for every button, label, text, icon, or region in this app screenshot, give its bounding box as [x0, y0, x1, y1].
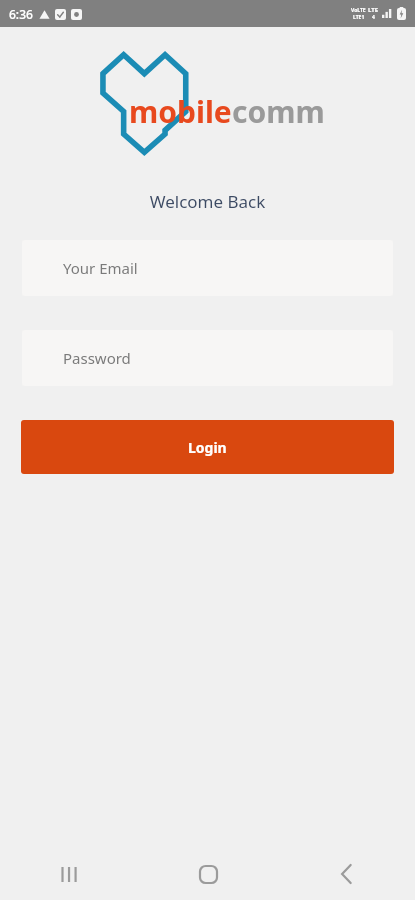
staticText: VoLTE — [351, 7, 366, 14]
button[interactable]: Back — [277, 848, 415, 900]
staticText: 6:36 — [9, 6, 33, 22]
button[interactable]: Home — [139, 848, 277, 900]
staticText: Password — [63, 348, 131, 368]
button[interactable]: Password — [22, 330, 393, 386]
button[interactable]: Recents — [0, 848, 139, 900]
button[interactable]: Login — [21, 420, 394, 474]
staticText: comm — [232, 91, 325, 132]
staticText: Welcome Back — [0, 190, 415, 213]
staticText: Login — [188, 438, 227, 457]
staticText: LTE1 — [353, 14, 365, 21]
staticText: mobile — [129, 91, 232, 132]
staticText: Your Email — [63, 258, 138, 278]
staticText: 4 — [372, 14, 375, 21]
staticText: LTE — [368, 6, 379, 14]
button[interactable]: Your Email — [22, 240, 393, 296]
